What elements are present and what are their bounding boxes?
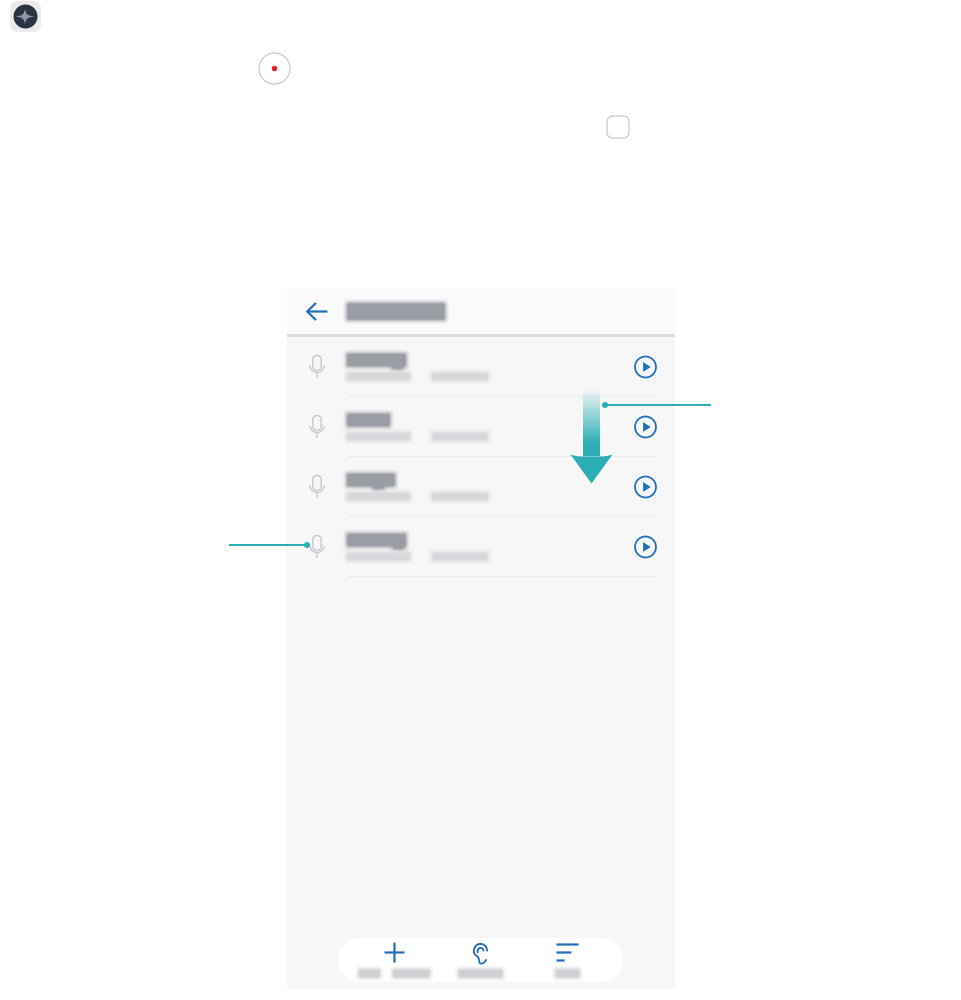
button[interactable]: Play recording: [627, 408, 664, 445]
button[interactable]: Play recording: [627, 468, 664, 505]
button[interactable]: Recording: [287, 397, 675, 457]
button[interactable]: Back: [297, 289, 338, 333]
button[interactable]: Earpiece: [433, 938, 528, 982]
button[interactable]: Recording: [287, 337, 675, 397]
button[interactable]: New recording: [347, 938, 442, 982]
button[interactable]: Play recording: [627, 348, 664, 385]
button[interactable]: Recording: [287, 457, 675, 517]
button[interactable]: Sort: [520, 938, 615, 982]
button[interactable]: Play recording: [627, 528, 664, 565]
button[interactable]: Recording: [287, 517, 675, 577]
